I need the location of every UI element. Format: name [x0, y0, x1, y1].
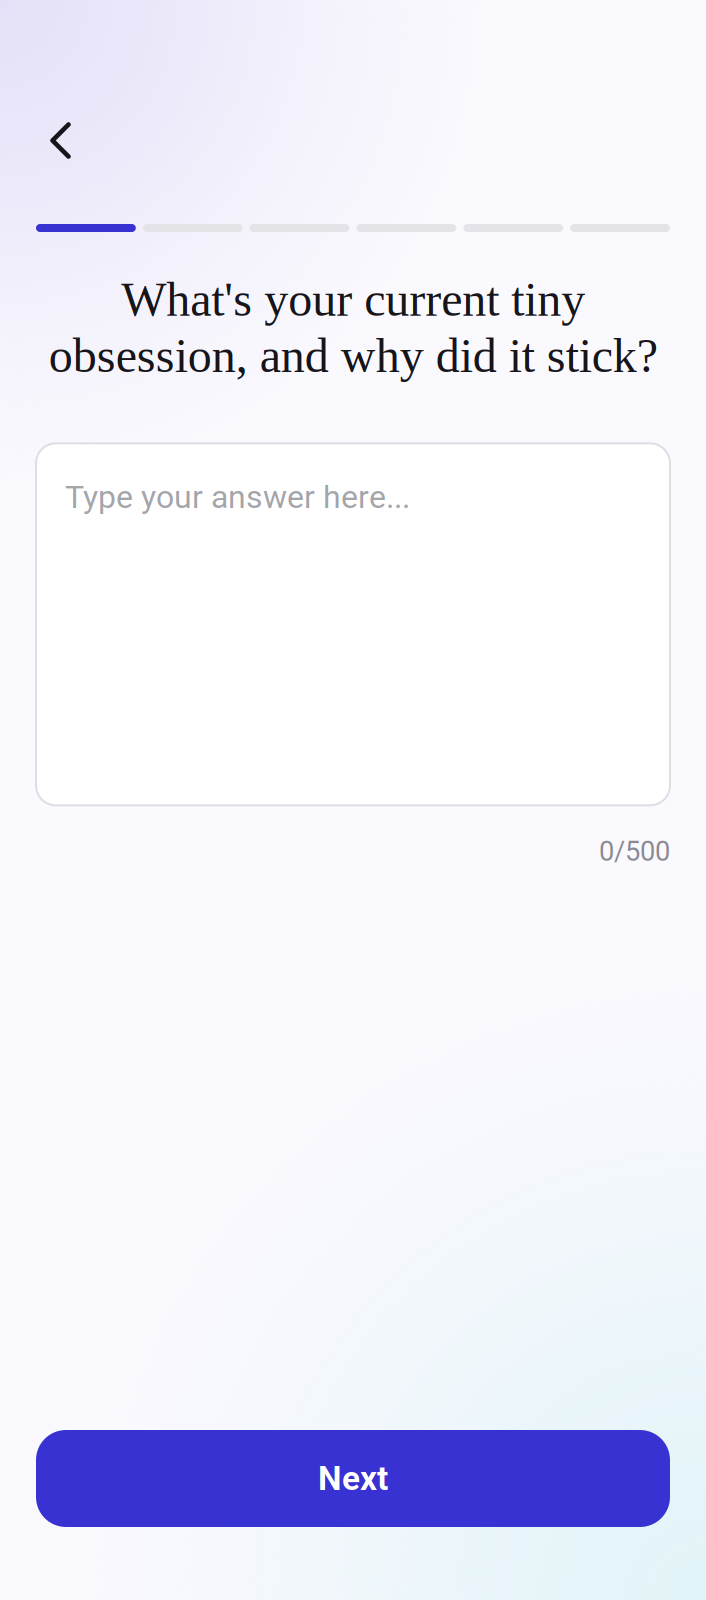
staticText: 0/500: [599, 835, 670, 867]
staticText: Next: [318, 1459, 388, 1498]
button[interactable]: Next: [0, 1430, 706, 1527]
button[interactable]: Back: [0, 106, 95, 175]
staticText: Type your answer here...: [65, 478, 410, 516]
staticText: What's your current tiny obsession, and …: [48, 273, 657, 382]
button[interactable]: Type your answer here...: [0, 382, 706, 805]
